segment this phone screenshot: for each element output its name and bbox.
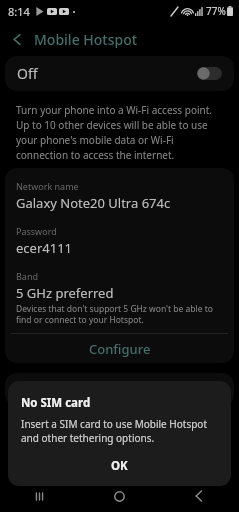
staticText: Insert a SIM card to use Mobile Hotspot … bbox=[21, 417, 218, 445]
staticText: OK bbox=[111, 458, 128, 474]
button[interactable]: Configure bbox=[5, 334, 234, 363]
staticText: Turn your phone into a Wi-Fi access poin… bbox=[16, 103, 225, 162]
staticText: No SIM card bbox=[21, 395, 91, 411]
button[interactable]: Network name bbox=[5, 168, 234, 212]
button[interactable]: Home bbox=[79, 480, 159, 512]
staticText: Devices that don't support 5 GHz won't b… bbox=[16, 303, 223, 325]
button[interactable]: Auto Hotspot bbox=[5, 373, 234, 406]
staticText: 77% bbox=[206, 4, 226, 18]
staticText: Network name bbox=[16, 180, 79, 192]
staticText: Galaxy Note20 Ultra 674c bbox=[16, 194, 171, 212]
button[interactable]: Band bbox=[5, 257, 234, 325]
staticText: Mobile Hotspot bbox=[34, 30, 138, 49]
button[interactable]: Back bbox=[159, 480, 239, 512]
staticText: 8:14 bbox=[8, 4, 30, 19]
staticText: 5 GHz preferred bbox=[16, 284, 114, 302]
staticText: Band bbox=[16, 270, 38, 282]
button[interactable]: Off bbox=[5, 56, 234, 91]
button[interactable]: Back bbox=[0, 22, 34, 56]
staticText: Off bbox=[17, 64, 38, 83]
button[interactable]: Recents bbox=[0, 480, 79, 512]
staticText: Auto Hotspot bbox=[17, 382, 93, 398]
staticText: Configure bbox=[89, 340, 151, 358]
button[interactable]: Password bbox=[5, 212, 234, 257]
button[interactable]: OK bbox=[21, 455, 218, 477]
staticText: ecer4111 bbox=[16, 239, 73, 257]
staticText: Password bbox=[16, 225, 57, 237]
